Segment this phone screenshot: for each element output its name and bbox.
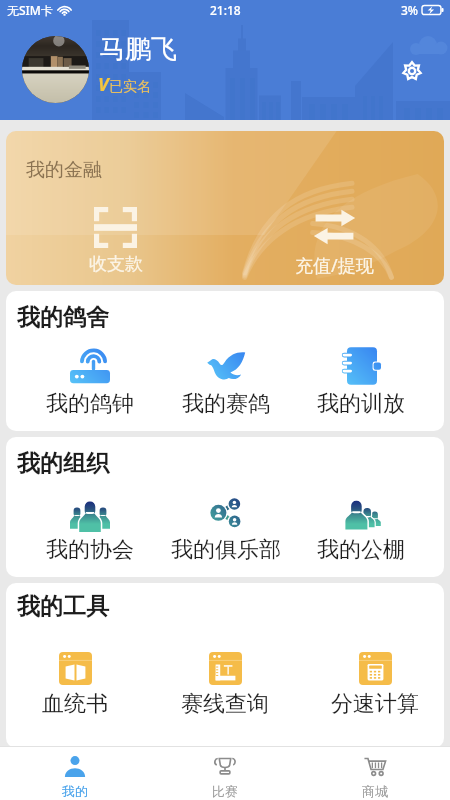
staticText: 赛线查询 — [181, 690, 269, 718]
staticText: 分速计算 — [331, 690, 419, 718]
button[interactable]: 我的协会 — [22, 492, 158, 564]
button[interactable]: 血统书 — [6, 652, 150, 718]
button[interactable]: 设置 — [393, 52, 431, 90]
staticText: 马鹏飞 — [99, 33, 177, 66]
staticText: 21:18 — [210, 2, 241, 18]
button[interactable]: 我的俱乐部 — [158, 492, 293, 564]
staticText: 我的金融 — [26, 158, 102, 182]
button[interactable]: 我的训放 — [293, 346, 428, 418]
staticText: V — [98, 72, 109, 97]
staticText: 我的公棚 — [317, 536, 405, 564]
staticText: 收支款 — [89, 253, 143, 276]
button[interactable]: 充值提现 — [225, 207, 444, 278]
staticText: 我的赛鸽 — [182, 390, 270, 418]
staticText: 我的俱乐部 — [171, 536, 281, 564]
staticText: 我的协会 — [46, 536, 134, 564]
staticText: 我的鸽钟 — [46, 390, 134, 418]
staticText: 血统书 — [42, 690, 108, 718]
staticText: 我的鸽舍 — [17, 303, 109, 332]
button[interactable]: 我的赛鸽 — [158, 346, 293, 418]
button[interactable]: 赛线查询 — [150, 652, 300, 718]
staticText: 已实名 — [109, 78, 151, 96]
staticText: 比赛 — [212, 783, 238, 799]
staticText: 我的工具 — [17, 592, 109, 621]
button[interactable]: 分速计算 — [300, 652, 444, 718]
button[interactable]: 我的鸽钟 — [22, 346, 158, 418]
button[interactable]: 收支款 — [6, 207, 225, 276]
button[interactable]: 比赛 — [150, 747, 300, 800]
staticText: 商城 — [362, 783, 388, 799]
staticText: 我的 — [62, 783, 88, 799]
staticText: 我的训放 — [317, 390, 405, 418]
button[interactable]: 我的公棚 — [293, 492, 428, 564]
button[interactable]: 商城 — [300, 747, 450, 800]
staticText: 我的组织 — [17, 449, 109, 478]
staticText: 充值/提现 — [295, 253, 374, 278]
button[interactable]: 我的 — [0, 747, 150, 800]
staticText: 无SIM卡 — [7, 2, 53, 18]
staticText: 3% — [401, 2, 419, 18]
button[interactable]: 用户头像 — [22, 36, 89, 103]
